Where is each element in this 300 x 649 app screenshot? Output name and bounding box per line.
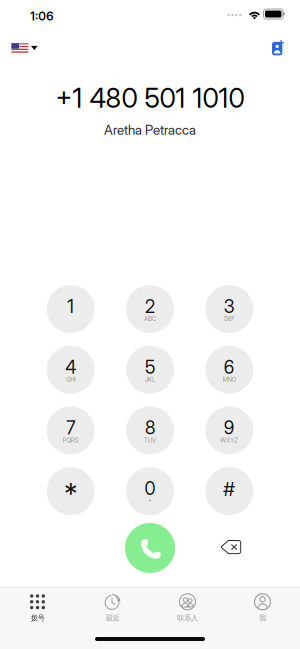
button[interactable]: 3 (205, 285, 253, 333)
staticText: 拨号 (30, 613, 44, 623)
staticText: 4 (65, 356, 76, 378)
staticText: # (223, 477, 235, 501)
staticText: + (148, 497, 152, 505)
button[interactable]: * (47, 467, 95, 515)
button[interactable]: 1 (47, 285, 95, 333)
button[interactable]: 7 (47, 406, 95, 454)
staticText: 0 (144, 478, 155, 499)
staticText: 5 (145, 356, 155, 378)
button[interactable]: 最近 (75, 587, 150, 627)
staticText: 8 (145, 417, 155, 439)
staticText: 联系人 (177, 613, 198, 623)
button[interactable]: 5 (126, 346, 174, 394)
staticText: 6 (224, 356, 235, 378)
staticText: 我 (259, 613, 266, 623)
button[interactable]: Delete (214, 533, 248, 563)
staticText: * (64, 477, 77, 511)
button[interactable]: 0 (126, 467, 174, 515)
staticText: 3 (224, 295, 235, 317)
staticText: MNO (223, 376, 236, 383)
button[interactable]: Add number to contacts (272, 40, 284, 56)
button[interactable]: # (205, 467, 253, 515)
button[interactable]: Call (125, 523, 175, 573)
staticText: 7 (66, 417, 75, 439)
staticText: 9 (224, 417, 235, 439)
button[interactable]: 拨号 (0, 587, 75, 627)
staticText: GHI (66, 376, 75, 383)
button[interactable]: 4 (47, 346, 95, 394)
staticText: 2 (145, 295, 155, 317)
button[interactable]: 9 (205, 406, 253, 454)
staticText: 1 (67, 295, 74, 317)
button[interactable]: 6 (205, 346, 253, 394)
button[interactable]: 联系人 (150, 587, 225, 627)
staticText: ABC (144, 315, 156, 322)
button[interactable]: 8 (126, 406, 174, 454)
staticText: +1 480 501 1010 (55, 82, 244, 114)
staticText: 1:06 (30, 9, 53, 23)
staticText: PQRS (63, 437, 79, 444)
staticText: JKL (145, 376, 155, 383)
staticText: 最近 (105, 613, 119, 623)
button[interactable]: 我 (225, 587, 300, 627)
button[interactable]: 2 (126, 285, 174, 333)
staticText: WXYZ (220, 437, 238, 444)
staticText: Aretha Petracca (104, 122, 196, 138)
staticText: DEF (224, 315, 234, 322)
staticText: TUV (144, 437, 156, 444)
button[interactable]: Select country code (11, 39, 38, 57)
